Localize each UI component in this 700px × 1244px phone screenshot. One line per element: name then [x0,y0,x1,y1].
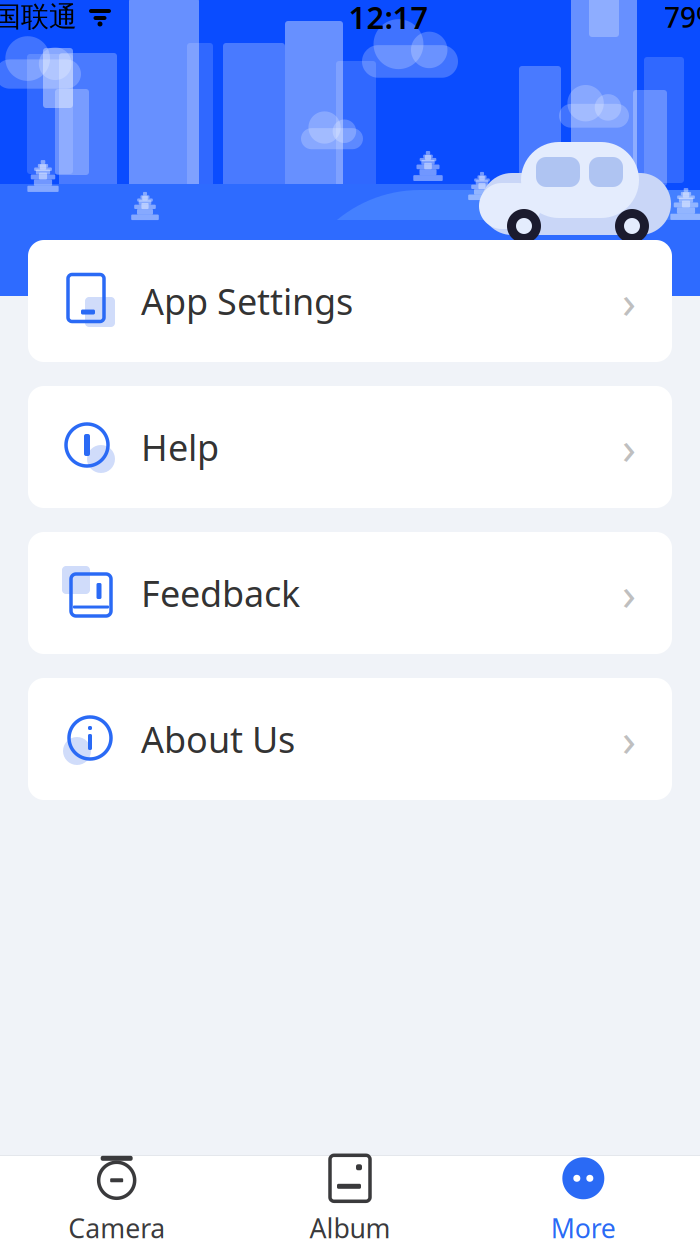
staticText: Help [141,423,219,471]
staticText: › [622,271,636,331]
staticText: › [622,417,636,477]
staticText: App Settings [141,277,353,325]
button[interactable]: Help [28,386,672,508]
button[interactable]: More [467,1156,700,1244]
staticText: More [551,1210,616,1244]
button[interactable]: Camera [0,1156,233,1244]
staticText: Camera [68,1210,165,1244]
staticText: Feedback [141,569,300,617]
staticText: › [622,563,636,623]
button[interactable]: Album [233,1156,467,1244]
staticText: 中国联通 [0,0,77,34]
button[interactable]: About Us [28,678,672,800]
staticText: 79% [664,0,700,36]
staticText: › [622,709,636,769]
staticText: 12:17 [348,0,428,37]
staticText: Album [309,1210,390,1244]
button[interactable]: Feedback [28,532,672,654]
staticText: About Us [141,715,295,763]
button[interactable]: App Settings [28,240,672,362]
